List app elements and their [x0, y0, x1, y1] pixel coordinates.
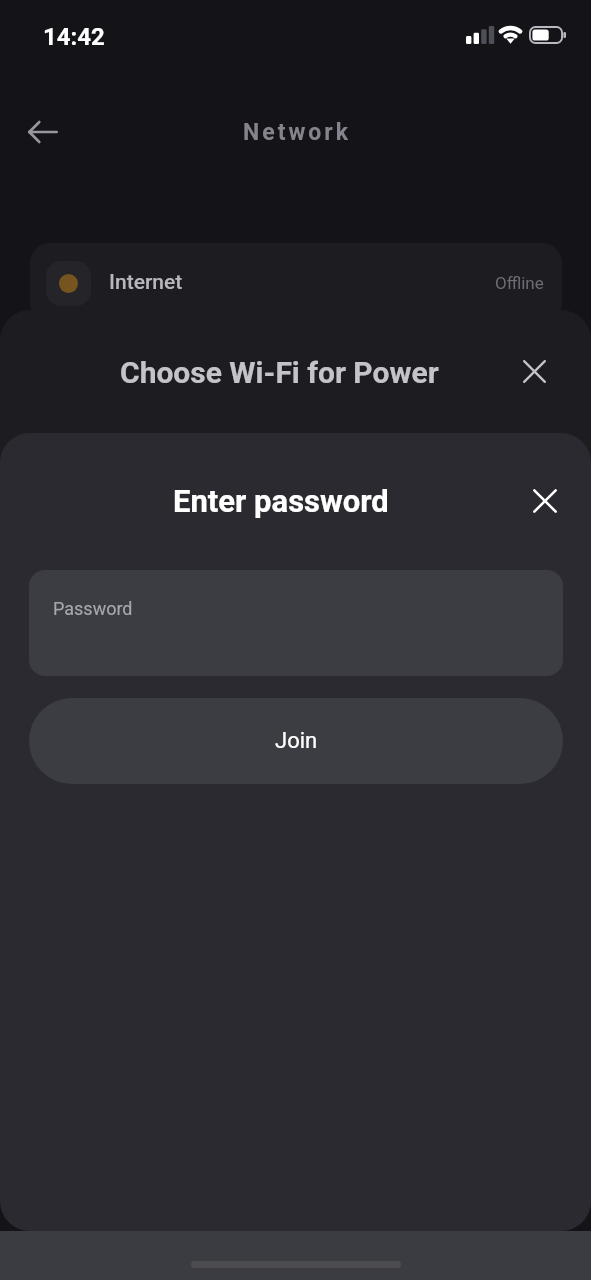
button[interactable]: Internet: [30, 243, 562, 323]
staticText: 14:42: [43, 23, 105, 51]
button[interactable]: Close Wi-Fi chooser: [510, 347, 558, 395]
button[interactable]: Password: [29, 570, 563, 676]
staticText: Enter password: [173, 483, 389, 519]
staticText: Join: [275, 728, 318, 754]
staticText: Internet: [109, 270, 183, 295]
staticText: Choose Wi-Fi for Power: [120, 355, 439, 390]
button[interactable]: Back: [21, 110, 65, 154]
button[interactable]: Join: [29, 698, 563, 784]
staticText: Password: [53, 598, 133, 619]
button[interactable]: Close password dialog: [521, 477, 569, 525]
staticText: Network: [243, 119, 352, 146]
staticText: Offline: [495, 273, 544, 293]
